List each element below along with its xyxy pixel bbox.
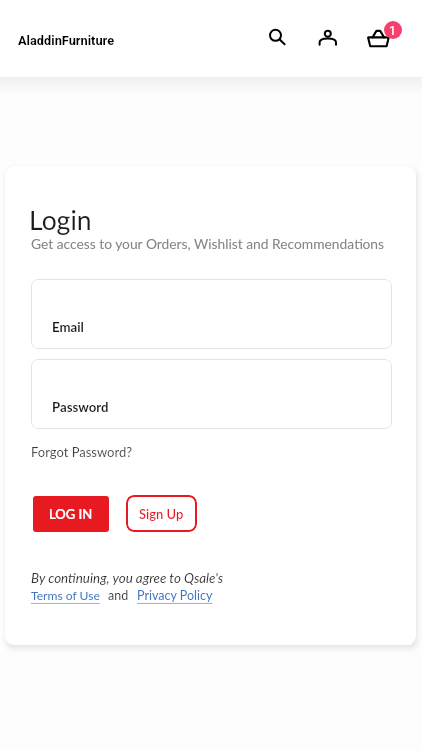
staticText: Get access to your Orders, Wishlist and …: [31, 235, 384, 252]
button[interactable]: Search: [258, 18, 295, 55]
button[interactable]: Password: [31, 359, 392, 429]
staticText: and: [108, 588, 129, 603]
staticText: 1: [389, 23, 397, 38]
button[interactable]: Cart: [362, 14, 404, 56]
staticText: LOG IN: [49, 506, 93, 522]
staticText: Password: [52, 399, 109, 415]
staticText: Login: [29, 204, 92, 236]
button[interactable]: Sign Up: [126, 495, 197, 532]
button[interactable]: Email: [31, 279, 392, 349]
button[interactable]: Terms of Use: [31, 588, 100, 603]
button[interactable]: Forgot Password?: [31, 444, 133, 460]
staticText: Sign Up: [139, 506, 184, 522]
staticText: By continuing, you agree to Qsale's: [31, 570, 224, 586]
button[interactable]: LOG IN: [33, 496, 109, 532]
staticText: AladdinFurniture: [18, 33, 115, 48]
staticText: Email: [52, 319, 84, 335]
button[interactable]: Account: [309, 18, 346, 55]
button[interactable]: Privacy Policy: [137, 588, 213, 603]
